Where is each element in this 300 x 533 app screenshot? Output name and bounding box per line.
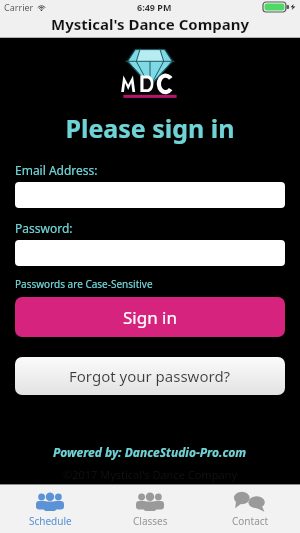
staticText: 6:49 PM xyxy=(137,1,172,13)
staticText: Schedule xyxy=(29,514,72,528)
button[interactable]: Classes xyxy=(100,485,200,533)
staticText: Forgot your password? xyxy=(69,366,231,386)
staticText: ©2017 Mystical's Dance Company xyxy=(63,467,237,482)
staticText: Carrier xyxy=(4,1,34,13)
button[interactable] xyxy=(15,182,285,208)
staticText: Password: xyxy=(15,220,73,236)
staticText: Contact xyxy=(232,514,269,528)
staticText: Sign in xyxy=(123,306,177,329)
button[interactable] xyxy=(15,240,285,266)
staticText: Please sign in xyxy=(65,111,235,145)
staticText: Powered by: DanceStudio-Pro.com xyxy=(53,444,247,460)
button[interactable]: Sign in xyxy=(15,297,285,337)
staticText: Classes xyxy=(133,514,168,528)
staticText: Mystical's Dance Company xyxy=(51,14,250,34)
staticText: Passwords are Case-Sensitive xyxy=(15,277,153,291)
button[interactable]: Forgot your password? xyxy=(15,357,285,395)
staticText: Email Address: xyxy=(15,162,98,178)
button[interactable]: Schedule xyxy=(0,485,100,533)
button[interactable]: Contact xyxy=(200,485,300,533)
